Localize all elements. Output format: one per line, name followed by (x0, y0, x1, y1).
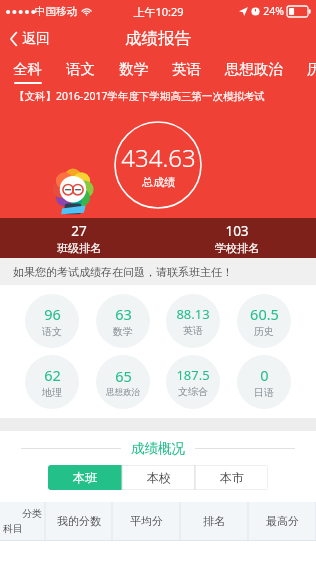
staticText: 0 (260, 365, 269, 385)
button[interactable]: 历 (307, 55, 316, 82)
staticText: 学校排名 (215, 241, 259, 255)
staticText: 434.63 (121, 141, 196, 174)
staticText: 本市 (220, 470, 244, 485)
staticText: 成绩概况 (131, 440, 185, 457)
staticText: 总成绩 (142, 175, 175, 189)
button[interactable]: 27 (0, 218, 158, 258)
staticText: 65 (115, 366, 132, 386)
staticText: 103 (225, 222, 249, 240)
staticText: 如果您的考试成绩存在问题，请联系班主任！ (13, 265, 233, 279)
staticText: 数学 (113, 325, 133, 338)
staticText: 88.13 (176, 305, 210, 323)
staticText: 数学 (119, 60, 148, 78)
staticText: 科目 (3, 522, 23, 535)
staticText: 思想政治 (225, 60, 283, 78)
button[interactable]: 434.63 (114, 121, 202, 209)
staticText: 60.5 (250, 304, 279, 324)
staticText: 全科 (13, 60, 42, 78)
button[interactable]: 返回 (0, 26, 60, 52)
button[interactable]: 数学 (119, 55, 148, 82)
button[interactable]: 187.5 (166, 355, 220, 409)
button[interactable]: 全科 (13, 55, 42, 84)
staticText: 62 (44, 365, 61, 385)
staticText: 我的分数 (57, 514, 101, 528)
staticText: 27 (71, 222, 87, 240)
button[interactable]: 本市 (195, 465, 268, 490)
staticText: 上午10:29 (133, 4, 184, 19)
staticText: 班级排名 (57, 241, 101, 255)
staticText: 英语 (183, 324, 203, 337)
button[interactable]: 62 (25, 355, 79, 409)
staticText: 返回 (22, 30, 50, 48)
button[interactable]: 96 (25, 294, 79, 348)
staticText: 本班 (73, 470, 97, 485)
staticText: 文综合 (178, 385, 208, 398)
staticText: 语文 (42, 325, 62, 338)
staticText: 63 (115, 304, 132, 324)
staticText: 地理 (42, 386, 62, 399)
staticText: 日语 (254, 386, 274, 399)
button[interactable]: 本校 (122, 465, 195, 490)
staticText: 中国移动 (35, 5, 77, 18)
staticText: 平均分 (130, 514, 163, 528)
staticText: 187.5 (176, 366, 210, 384)
button[interactable]: 本班 (48, 465, 122, 490)
button[interactable]: 英语 (172, 55, 201, 82)
button[interactable]: 103 (158, 218, 316, 258)
staticText: 分类 (22, 507, 42, 520)
button[interactable]: 0 (237, 355, 291, 409)
button[interactable]: 88.13 (166, 294, 220, 348)
staticText: 最高分 (266, 514, 299, 528)
staticText: 英语 (172, 60, 201, 78)
button[interactable]: 63 (96, 294, 150, 348)
staticText: 成绩报告 (125, 28, 191, 49)
staticText: 历史 (254, 325, 274, 338)
staticText: 96 (44, 304, 61, 324)
button[interactable]: 思想政治 (225, 55, 283, 82)
button[interactable]: 语文 (66, 55, 95, 82)
staticText: 【文科】2016-2017学年度下学期高三第一次模拟考试 (14, 89, 265, 103)
button[interactable]: 60.5 (237, 294, 291, 348)
staticText: 思想政治 (106, 387, 140, 398)
staticText: 历 (307, 60, 316, 78)
staticText: 语文 (66, 60, 95, 78)
button[interactable]: 65 (96, 355, 150, 409)
staticText: 本校 (147, 470, 171, 485)
staticText: 排名 (203, 514, 225, 528)
staticText: 24% (263, 4, 284, 18)
